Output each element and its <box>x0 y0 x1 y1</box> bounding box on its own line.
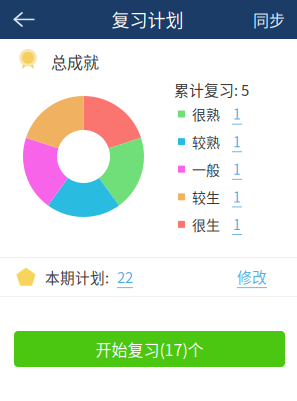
staticText: 一般 <box>192 159 220 179</box>
staticText: 总成就 <box>51 50 99 73</box>
staticText: 修改 <box>237 266 267 287</box>
staticText: 1 <box>233 214 241 234</box>
staticText: 1 <box>233 131 241 151</box>
staticText: 开始复习(17)个 <box>95 337 203 361</box>
staticText: 1 <box>233 159 241 179</box>
staticText: 很熟 <box>192 104 220 124</box>
staticText: 复习计划 <box>111 6 183 33</box>
staticText: 1 <box>233 186 241 206</box>
staticText: 较生 <box>192 187 220 207</box>
staticText: 较熟 <box>192 131 220 152</box>
staticText: 同步 <box>253 8 285 31</box>
button[interactable]: Back <box>0 0 48 39</box>
staticText: 1 <box>233 103 241 124</box>
staticText: 很生 <box>192 214 220 235</box>
staticText: 累计复习: 5 <box>174 79 249 100</box>
button[interactable]: 同步 <box>241 0 297 39</box>
button[interactable]: 开始复习(17)个 <box>14 331 285 367</box>
staticText: 22 <box>117 266 133 287</box>
staticText: 本期计划: <box>45 266 109 288</box>
button[interactable]: 本期计划: <box>0 258 297 296</box>
